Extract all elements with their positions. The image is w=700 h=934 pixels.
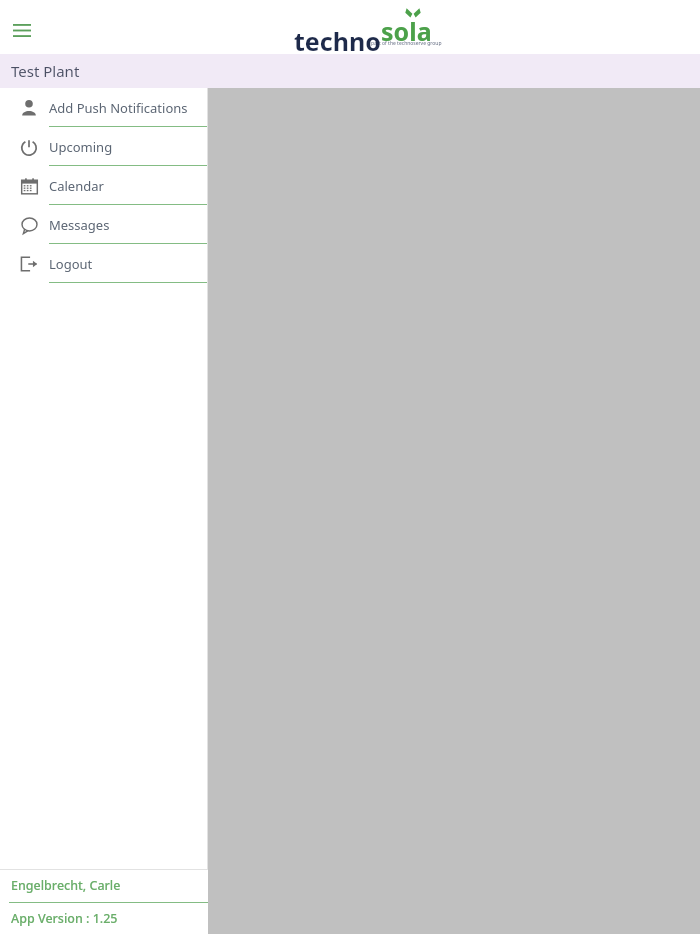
button[interactable]: Add Push Notifications [0, 88, 208, 127]
staticText: part of the technoserve group [371, 40, 442, 47]
button[interactable]: Logout [0, 244, 208, 283]
staticText: Test Plant [11, 61, 80, 81]
staticText: Logout [49, 255, 93, 273]
staticText: Upcoming [49, 138, 113, 156]
staticText: Add Push Notifications [49, 99, 188, 117]
button[interactable]: Messages [0, 205, 208, 244]
staticText: Calendar [49, 177, 104, 195]
staticText: Messages [49, 216, 110, 234]
staticText: solar [381, 14, 442, 58]
button[interactable]: Upcoming [0, 127, 208, 166]
button[interactable]: Open navigation menu [6, 14, 38, 46]
staticText: App Version : 1.25 [11, 910, 118, 927]
staticText: techno [294, 24, 381, 58]
button[interactable]: Engelbrecht, Carle [0, 869, 208, 902]
button[interactable]: Calendar [0, 166, 208, 205]
staticText: Engelbrecht, Carle [11, 877, 121, 894]
